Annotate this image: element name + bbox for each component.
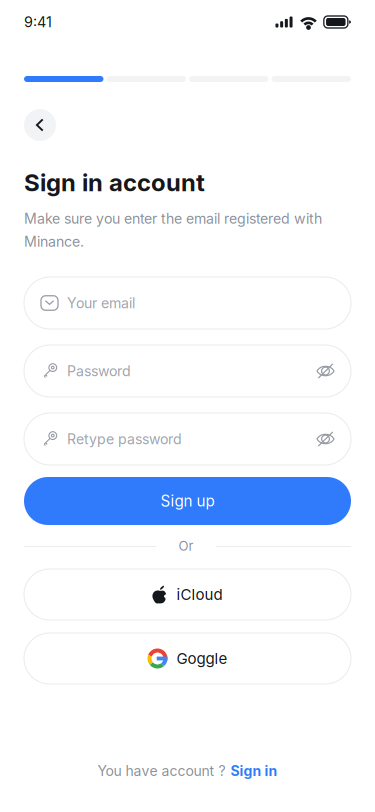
staticText: iCloud (176, 585, 222, 604)
staticText: Make sure you enter the email registered… (24, 210, 322, 227)
staticText: Retype password (67, 430, 182, 447)
staticText: Sign up (160, 492, 214, 510)
staticText: Minance. (24, 233, 84, 250)
button[interactable]: iCloud (24, 569, 351, 620)
staticText: You have account ? (97, 762, 225, 779)
staticText: Sign in account (24, 168, 205, 197)
button[interactable]: Sign up (24, 477, 351, 525)
button[interactable]: Back (24, 109, 56, 141)
button[interactable]: Goggle (24, 633, 351, 684)
staticText: Sign in (230, 762, 277, 779)
staticText: Goggle (176, 649, 227, 668)
staticText: Your email (67, 294, 135, 311)
staticText: Or (178, 538, 193, 554)
button[interactable]: You have account ? (0, 761, 375, 781)
staticText: Password (67, 362, 131, 379)
staticText: 9:41 (24, 13, 52, 31)
